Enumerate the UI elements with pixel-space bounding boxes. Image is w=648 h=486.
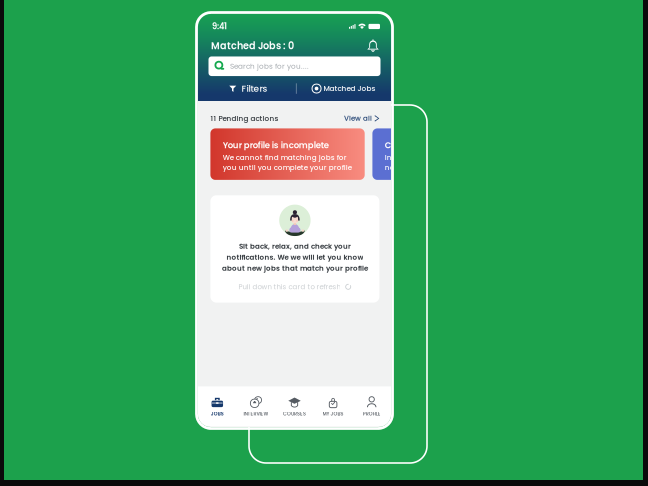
button[interactable]: PROFILE (352, 386, 391, 426)
button[interactable]: Co (372, 128, 502, 180)
staticText: 9:41 (212, 21, 227, 32)
staticText: Co (385, 139, 397, 151)
button[interactable]: Notifications (365, 38, 381, 54)
staticText: Sit back, relax, and check your (239, 241, 351, 251)
button[interactable]: JOBS (198, 386, 237, 426)
staticText: COURSES (283, 410, 306, 417)
staticText: JOBS (211, 410, 224, 417)
button[interactable]: MY JOBS (314, 386, 352, 426)
staticText: In (385, 152, 392, 162)
staticText: Filters (242, 82, 268, 95)
staticText: notifications. We we will let you know (226, 252, 363, 262)
button[interactable]: Matched Jobs (297, 80, 390, 98)
staticText: you until you complete your profile (223, 162, 352, 172)
button[interactable]: Search jobs for you.... (208, 56, 380, 76)
button[interactable]: Filters (200, 80, 296, 98)
staticText: INTERVIEW (243, 410, 268, 417)
button[interactable]: View all (344, 113, 379, 123)
staticText: Your profile is incomplete (223, 139, 329, 151)
staticText: Matched Jobs : 0 (211, 39, 294, 53)
staticText: MY JOBS (323, 410, 344, 417)
button[interactable]: COURSES (275, 386, 314, 426)
staticText: 11 Pending actions (210, 113, 278, 123)
staticText: PROFILE (363, 410, 381, 417)
staticText: no (385, 162, 395, 172)
staticText: Pull down this card to refresh (238, 282, 340, 292)
button[interactable]: Your profile is incomplete (210, 128, 365, 180)
staticText: about new jobs that match your profile (222, 263, 368, 273)
staticText: View all (344, 113, 372, 123)
staticText: Search jobs for you.... (230, 61, 309, 71)
staticText: We cannot find matching jobs for (223, 152, 347, 162)
button[interactable]: INTERVIEW (237, 386, 275, 426)
staticText: Matched Jobs (324, 83, 376, 94)
